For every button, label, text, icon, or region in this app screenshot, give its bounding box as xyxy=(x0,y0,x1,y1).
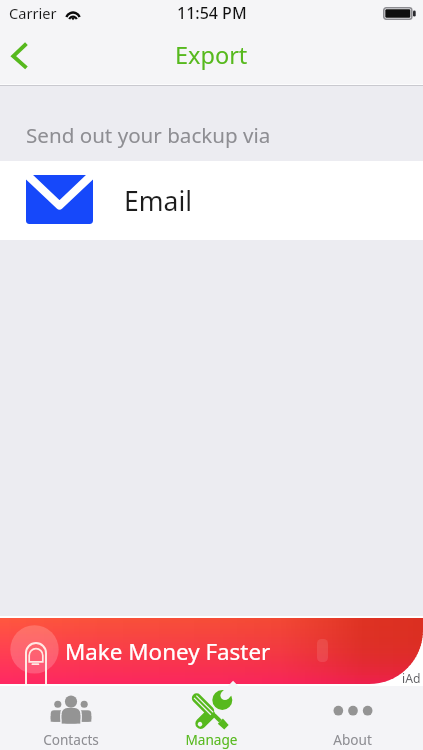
button[interactable]: Contacts xyxy=(0,686,141,750)
button[interactable]: Manage xyxy=(141,686,282,750)
button[interactable]: Back xyxy=(0,33,42,77)
staticText: Send out your backup via xyxy=(26,121,271,149)
staticText: Manage xyxy=(185,730,238,749)
staticText: Carrier xyxy=(9,3,57,23)
staticText: iAd xyxy=(402,670,421,687)
staticText: 11:54 PM xyxy=(177,2,247,24)
button[interactable]: Make Money Faster xyxy=(0,618,423,684)
button[interactable]: Email xyxy=(0,161,423,240)
staticText: Export xyxy=(175,39,248,71)
staticText: Contacts xyxy=(43,730,99,749)
button[interactable]: About xyxy=(282,686,423,750)
staticText: Email xyxy=(124,183,193,219)
staticText: Make Money Faster xyxy=(65,636,271,667)
staticText: About xyxy=(333,730,372,749)
